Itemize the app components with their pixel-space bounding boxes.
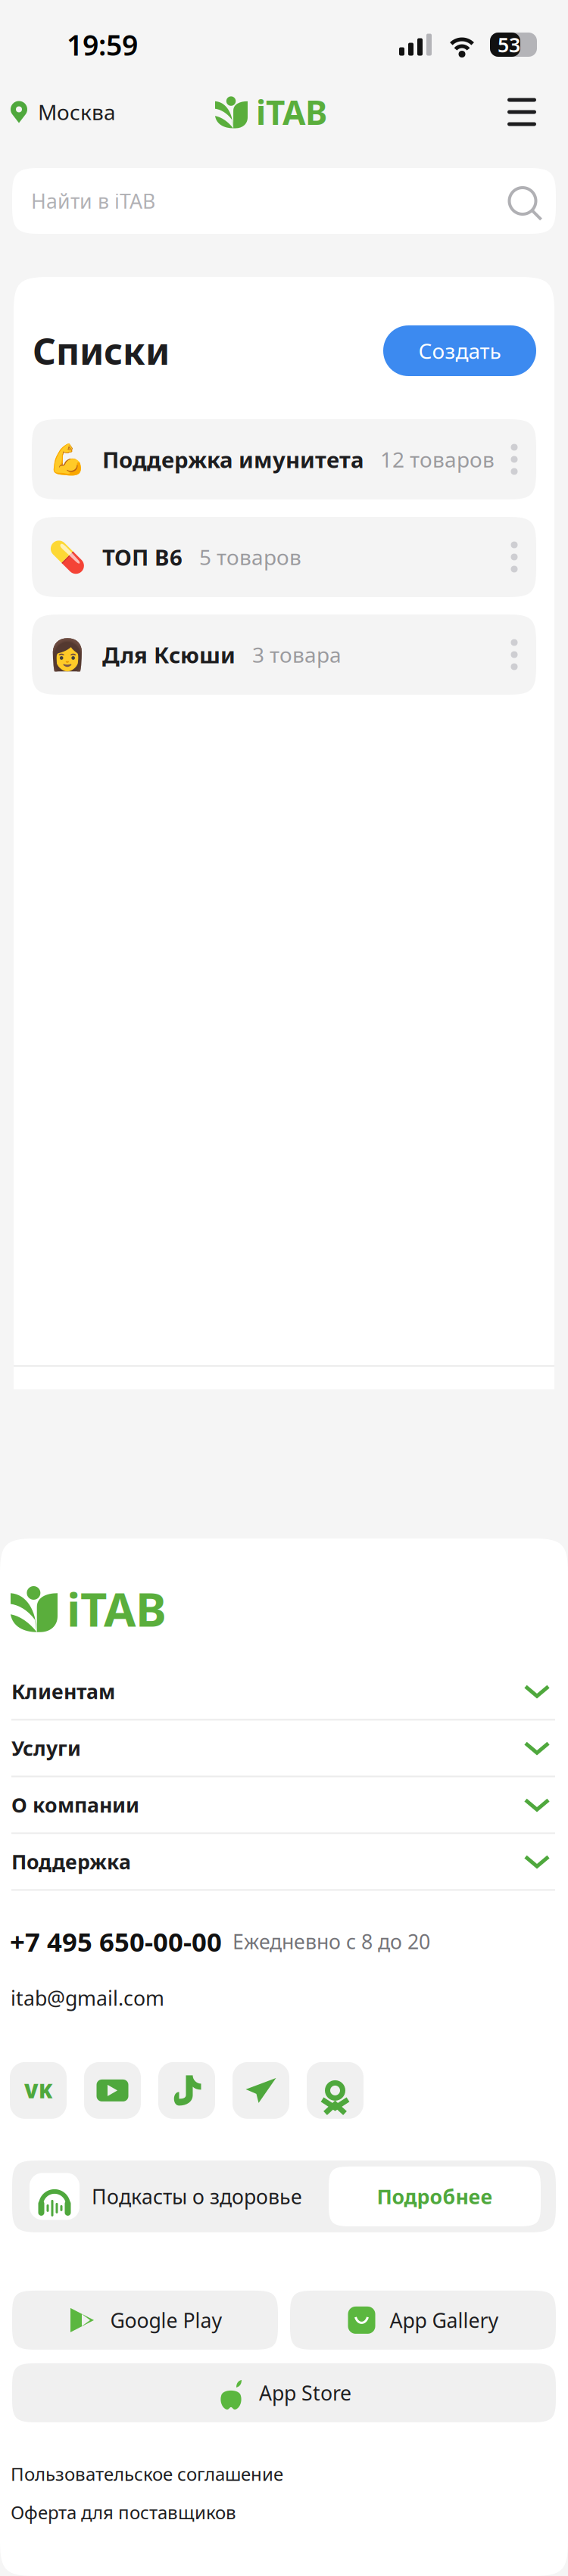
button[interactable]: App Store [12,2363,556,2422]
staticText: iTAB [256,90,327,134]
button[interactable]: TikTok [158,2062,215,2119]
button[interactable]: ВКонтакте [10,2062,67,2119]
staticText: О компании [11,1791,139,1818]
staticText: 👩 [48,637,86,672]
button[interactable]: 💊 [32,517,536,597]
staticText: Поддержка [11,1848,131,1875]
staticText: Ежедневно с 8 до 20 [233,1928,430,1955]
staticText: iTAB [67,1578,167,1639]
button[interactable]: Услуги [11,1720,555,1777]
staticText: VK [24,2077,52,2104]
staticText: 💊 [48,540,86,574]
button[interactable]: itab@gmail.com [11,1985,164,2011]
staticText: App Store [259,2379,351,2406]
staticText: +7 495 650-00-00 [10,1924,222,1959]
button[interactable]: 👩 [32,614,536,695]
staticText: Найти в iTAB [31,188,155,214]
staticText: Создать [418,337,501,365]
staticText: Пользовательское соглашение [11,2462,283,2486]
staticText: Подробнее [377,2183,493,2210]
staticText: 19:59 [67,26,138,63]
button[interactable]: Оферта для поставщиков [11,2500,236,2524]
staticText: App Gallery [390,2307,499,2334]
staticText: 53 [498,31,520,58]
button[interactable]: 💪 [32,419,536,499]
button[interactable]: Создать [383,325,536,376]
button[interactable]: Одноклассники [307,2062,364,2119]
staticText: Поддержка имунитета [102,445,364,474]
staticText: Списки [33,327,170,375]
staticText: itab@gmail.com [11,1985,164,2011]
button[interactable]: Москва [0,82,125,142]
staticText: Клиентам [11,1678,115,1705]
staticText: 💪 [48,442,86,477]
button[interactable]: Telegram [233,2062,289,2119]
staticText: 12 товаров [380,445,495,473]
button[interactable]: Подробнее [329,2167,541,2226]
button[interactable]: Подкасты о здоровье [12,2160,302,2232]
button[interactable]: +7 495 650-00-00 [10,1924,222,1959]
button[interactable]: О компании [11,1777,555,1834]
button[interactable]: YouTube [84,2062,141,2119]
staticText: Google Play [110,2307,222,2334]
button[interactable]: App Gallery [290,2291,556,2350]
staticText: Для Ксюши [102,640,236,669]
button[interactable]: Google Play [12,2291,278,2350]
staticText: Подкасты о здоровье [92,2183,302,2210]
button[interactable]: Пользовательское соглашение [11,2462,283,2486]
button[interactable]: Найти в iTAB [12,168,556,234]
staticText: 5 товаров [199,543,301,571]
staticText: Москва [38,98,116,126]
staticText: Оферта для поставщиков [11,2500,236,2524]
staticText: Услуги [11,1735,81,1761]
button[interactable]: Клиентам [11,1664,555,1720]
button[interactable]: Меню [498,82,568,142]
staticText: ТОП B6 [102,542,183,572]
button[interactable]: Поддержка [11,1834,555,1891]
staticText: 3 товара [252,641,342,669]
